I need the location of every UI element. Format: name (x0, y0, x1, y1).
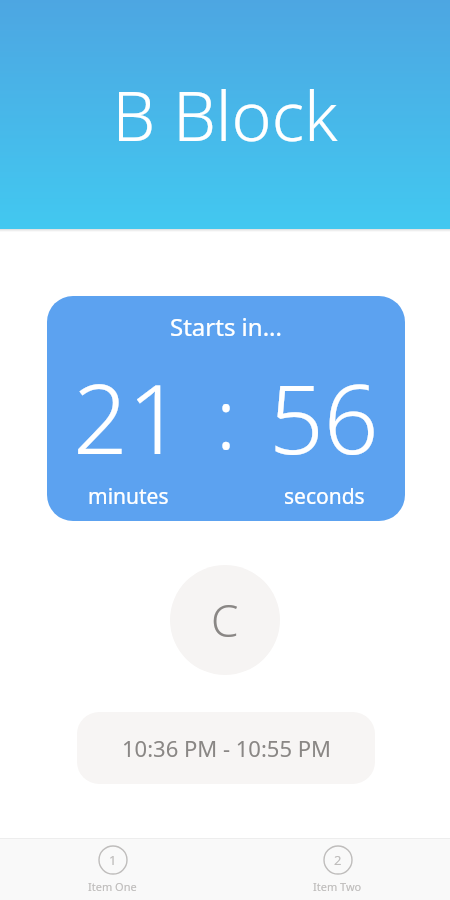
staticText: 21 (73, 351, 183, 482)
staticText: : (216, 361, 237, 473)
staticText: Item Two (313, 879, 362, 894)
staticText: Item One (88, 879, 137, 894)
button[interactable]: 1 (0, 839, 225, 900)
staticText: C (211, 590, 239, 650)
button[interactable]: 2 (225, 839, 450, 900)
staticText: 1 (109, 851, 117, 869)
staticText: 56 (269, 351, 379, 482)
button[interactable]: Starts in... (47, 296, 405, 521)
button[interactable]: Block C (170, 565, 280, 675)
button[interactable]: 10:36 PM - 10:55 PM (77, 712, 375, 784)
staticText: Starts in... (170, 310, 282, 343)
staticText: 2 (334, 851, 342, 869)
staticText: B Block (112, 68, 338, 161)
staticText: 10:36 PM - 10:55 PM (122, 733, 331, 763)
staticText: minutes (88, 482, 169, 511)
staticText: seconds (284, 482, 365, 511)
